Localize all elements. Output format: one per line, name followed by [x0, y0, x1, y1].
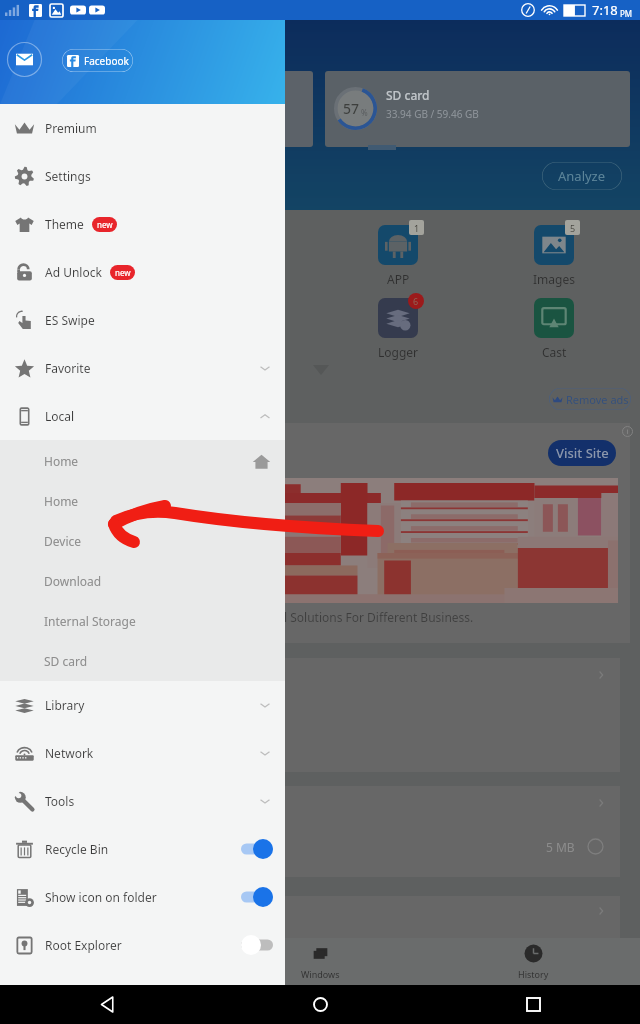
- button[interactable]: [258, 71, 313, 147]
- staticText: new: [115, 267, 131, 278]
- button[interactable]: History: [427, 938, 640, 985]
- staticText: Theme: [45, 216, 84, 232]
- staticText: 5: [570, 222, 576, 234]
- button[interactable]: Recycle Bin: [0, 825, 285, 873]
- staticText: History: [518, 968, 549, 980]
- staticText: Facebook: [84, 54, 129, 68]
- staticText: Windows: [301, 968, 340, 980]
- button[interactable]: 6: [368, 298, 428, 360]
- staticText: 5 MB: [546, 839, 575, 855]
- staticText: Recycle Bin: [45, 841, 109, 857]
- button[interactable]: Toggle off: [241, 935, 273, 955]
- staticText: SD card: [44, 653, 88, 669]
- staticText: PM: [620, 8, 633, 19]
- button[interactable]: Refresh: [0, 938, 214, 985]
- staticText: Download: [44, 573, 102, 589]
- button[interactable]: Root Explorer: [0, 921, 285, 969]
- button[interactable]: Show icon on folder: [0, 873, 285, 921]
- staticText: APP: [387, 271, 410, 287]
- other: Home: [313, 997, 328, 1012]
- button[interactable]: Settings: [0, 152, 285, 200]
- staticText: Ad Unlock: [45, 264, 102, 280]
- staticText: Show icon on folder: [45, 889, 157, 905]
- staticText: Home: [44, 493, 79, 509]
- button[interactable]: Network: [0, 729, 285, 777]
- button[interactable]: Ad Unlock: [0, 248, 285, 296]
- staticText: Cast: [542, 344, 567, 360]
- other: Back: [100, 997, 115, 1012]
- staticText: 1: [414, 222, 420, 234]
- staticText: Favorite: [45, 360, 91, 376]
- button[interactable]: Library: [0, 681, 285, 729]
- button[interactable]: Download: [0, 561, 285, 601]
- button[interactable]: Remove ads: [549, 388, 631, 410]
- staticText: 7:18: [592, 1, 618, 19]
- button[interactable]: Theme: [0, 200, 285, 248]
- staticText: Device: [44, 533, 82, 549]
- button[interactable]: Toggle on: [241, 887, 273, 907]
- button[interactable]: Analyze: [542, 162, 622, 190]
- staticText: Remove ads: [566, 392, 629, 407]
- staticText: 33.94 GB / 59.46 GB: [386, 107, 479, 121]
- staticText: l Solutions For Different Business.: [284, 609, 474, 625]
- staticText: 6: [413, 295, 419, 307]
- button[interactable]: 5 MB: [284, 786, 620, 877]
- staticText: Library: [45, 697, 85, 713]
- staticText: Premium: [45, 120, 97, 136]
- staticText: Analyze: [558, 167, 606, 185]
- staticText: 57: [343, 99, 360, 118]
- staticText: SD card: [386, 87, 430, 103]
- staticText: Visit Site: [556, 444, 609, 462]
- button[interactable]: 5: [524, 225, 584, 287]
- button[interactable]: Home: [0, 441, 285, 481]
- button[interactable]: [284, 896, 620, 938]
- button[interactable]: Mail: [6, 41, 43, 78]
- button[interactable]: Premium: [0, 104, 285, 152]
- staticText: Tools: [45, 793, 75, 809]
- button[interactable]: ES Swipe: [0, 296, 285, 344]
- button[interactable]: Cast: [524, 298, 584, 360]
- staticText: Root Explorer: [45, 937, 122, 953]
- staticText: Logger: [378, 344, 419, 360]
- other: Recents: [527, 998, 540, 1011]
- button[interactable]: Local: [0, 392, 285, 440]
- button[interactable]: SD card: [0, 641, 285, 681]
- button[interactable]: Toggle on: [241, 839, 273, 859]
- button[interactable]: Home: [0, 481, 285, 521]
- staticText: ES Swipe: [45, 312, 95, 328]
- staticText: Network: [45, 745, 94, 761]
- button[interactable]: Facebook: [62, 49, 133, 72]
- button[interactable]: Visit Site: [548, 440, 616, 466]
- staticText: Settings: [45, 168, 91, 184]
- button[interactable]: Tools: [0, 777, 285, 825]
- button[interactable]: Favorite: [0, 344, 285, 392]
- staticText: Internal Storage: [44, 613, 136, 629]
- staticText: %: [361, 107, 368, 118]
- staticText: Local: [45, 408, 75, 424]
- button[interactable]: Windows: [214, 938, 427, 985]
- button[interactable]: 1: [368, 225, 428, 287]
- staticText: Home: [44, 453, 79, 469]
- staticText: new: [97, 219, 113, 230]
- staticText: Images: [533, 271, 575, 287]
- button[interactable]: Device: [0, 521, 285, 561]
- button[interactable]: 57: [325, 71, 630, 147]
- button[interactable]: [284, 658, 620, 772]
- button[interactable]: Internal Storage: [0, 601, 285, 641]
